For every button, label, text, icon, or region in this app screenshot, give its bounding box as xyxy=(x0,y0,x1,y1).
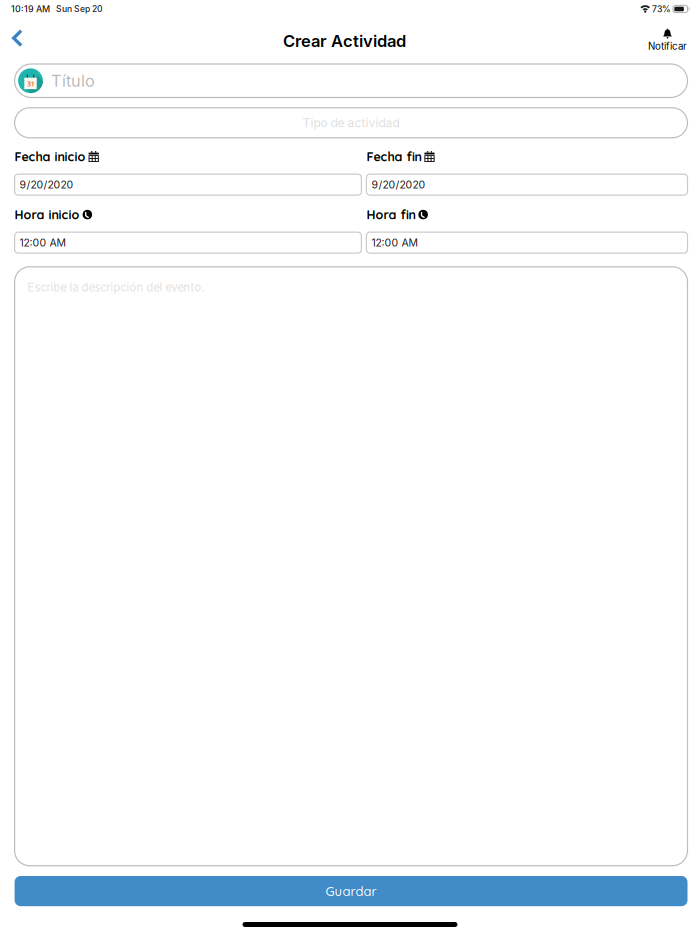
staticText: Hora inicio xyxy=(15,207,80,222)
staticText: 10:19 AM xyxy=(11,4,50,14)
staticText: Guardar xyxy=(326,883,377,899)
staticText: Fecha fin xyxy=(366,149,421,164)
staticText: 31 xyxy=(27,78,34,88)
staticText: Hora fin xyxy=(366,207,415,222)
staticText: 12:00 AM xyxy=(20,236,67,249)
staticText: Crear Actividad xyxy=(283,31,406,51)
button[interactable]: Guardar xyxy=(15,876,687,906)
staticText: Fecha inicio xyxy=(15,149,86,164)
staticText: 9/20/2020 xyxy=(371,178,425,191)
button[interactable]: Back xyxy=(0,21,46,61)
staticText: 12:00 AM xyxy=(371,236,418,249)
staticText: 73% xyxy=(650,4,673,14)
staticText: Tipo de actividad xyxy=(303,115,400,130)
staticText: Título xyxy=(51,71,95,91)
staticText: Escribe la descripción del evento. xyxy=(28,281,205,294)
staticText: Notificar xyxy=(648,40,687,52)
staticText: Sun Sep 20 xyxy=(50,4,103,14)
button[interactable]: Notificar xyxy=(648,24,700,58)
staticText: 9/20/2020 xyxy=(20,178,74,191)
